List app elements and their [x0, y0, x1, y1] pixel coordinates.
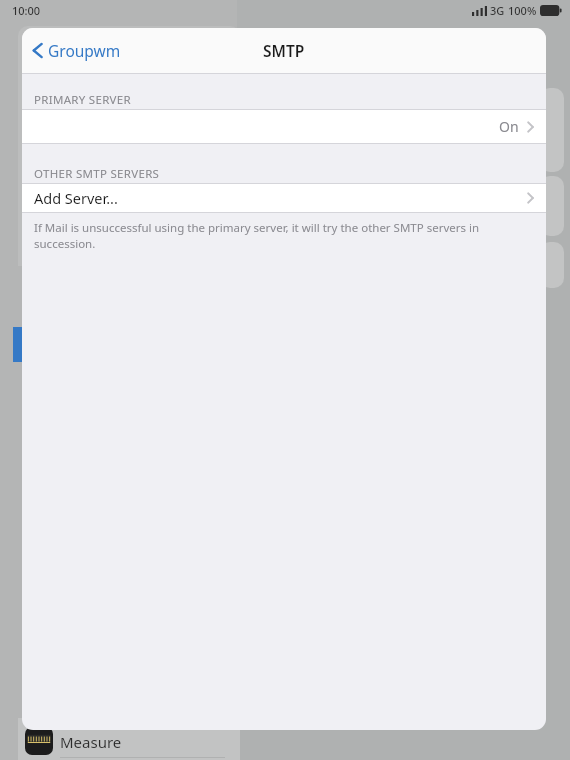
staticText: 10:00 [12, 3, 41, 18]
button[interactable]: Groupwm [22, 34, 129, 67]
staticText: Measure [60, 732, 122, 752]
staticText: OTHER SMTP SERVERS [34, 166, 160, 182]
staticText: Add Server... [34, 188, 118, 208]
staticText: PRIMARY SERVER [34, 92, 131, 108]
staticText: Groupwm [48, 40, 121, 61]
staticText: 3G [490, 3, 505, 18]
staticText: 100% [508, 3, 537, 18]
staticText: SMTP [263, 40, 305, 61]
button[interactable]: Add Server... [22, 184, 546, 212]
button[interactable]: On [22, 110, 546, 143]
staticText: On [499, 117, 519, 136]
staticText: If Mail is unsuccessful using the primar… [34, 220, 530, 251]
